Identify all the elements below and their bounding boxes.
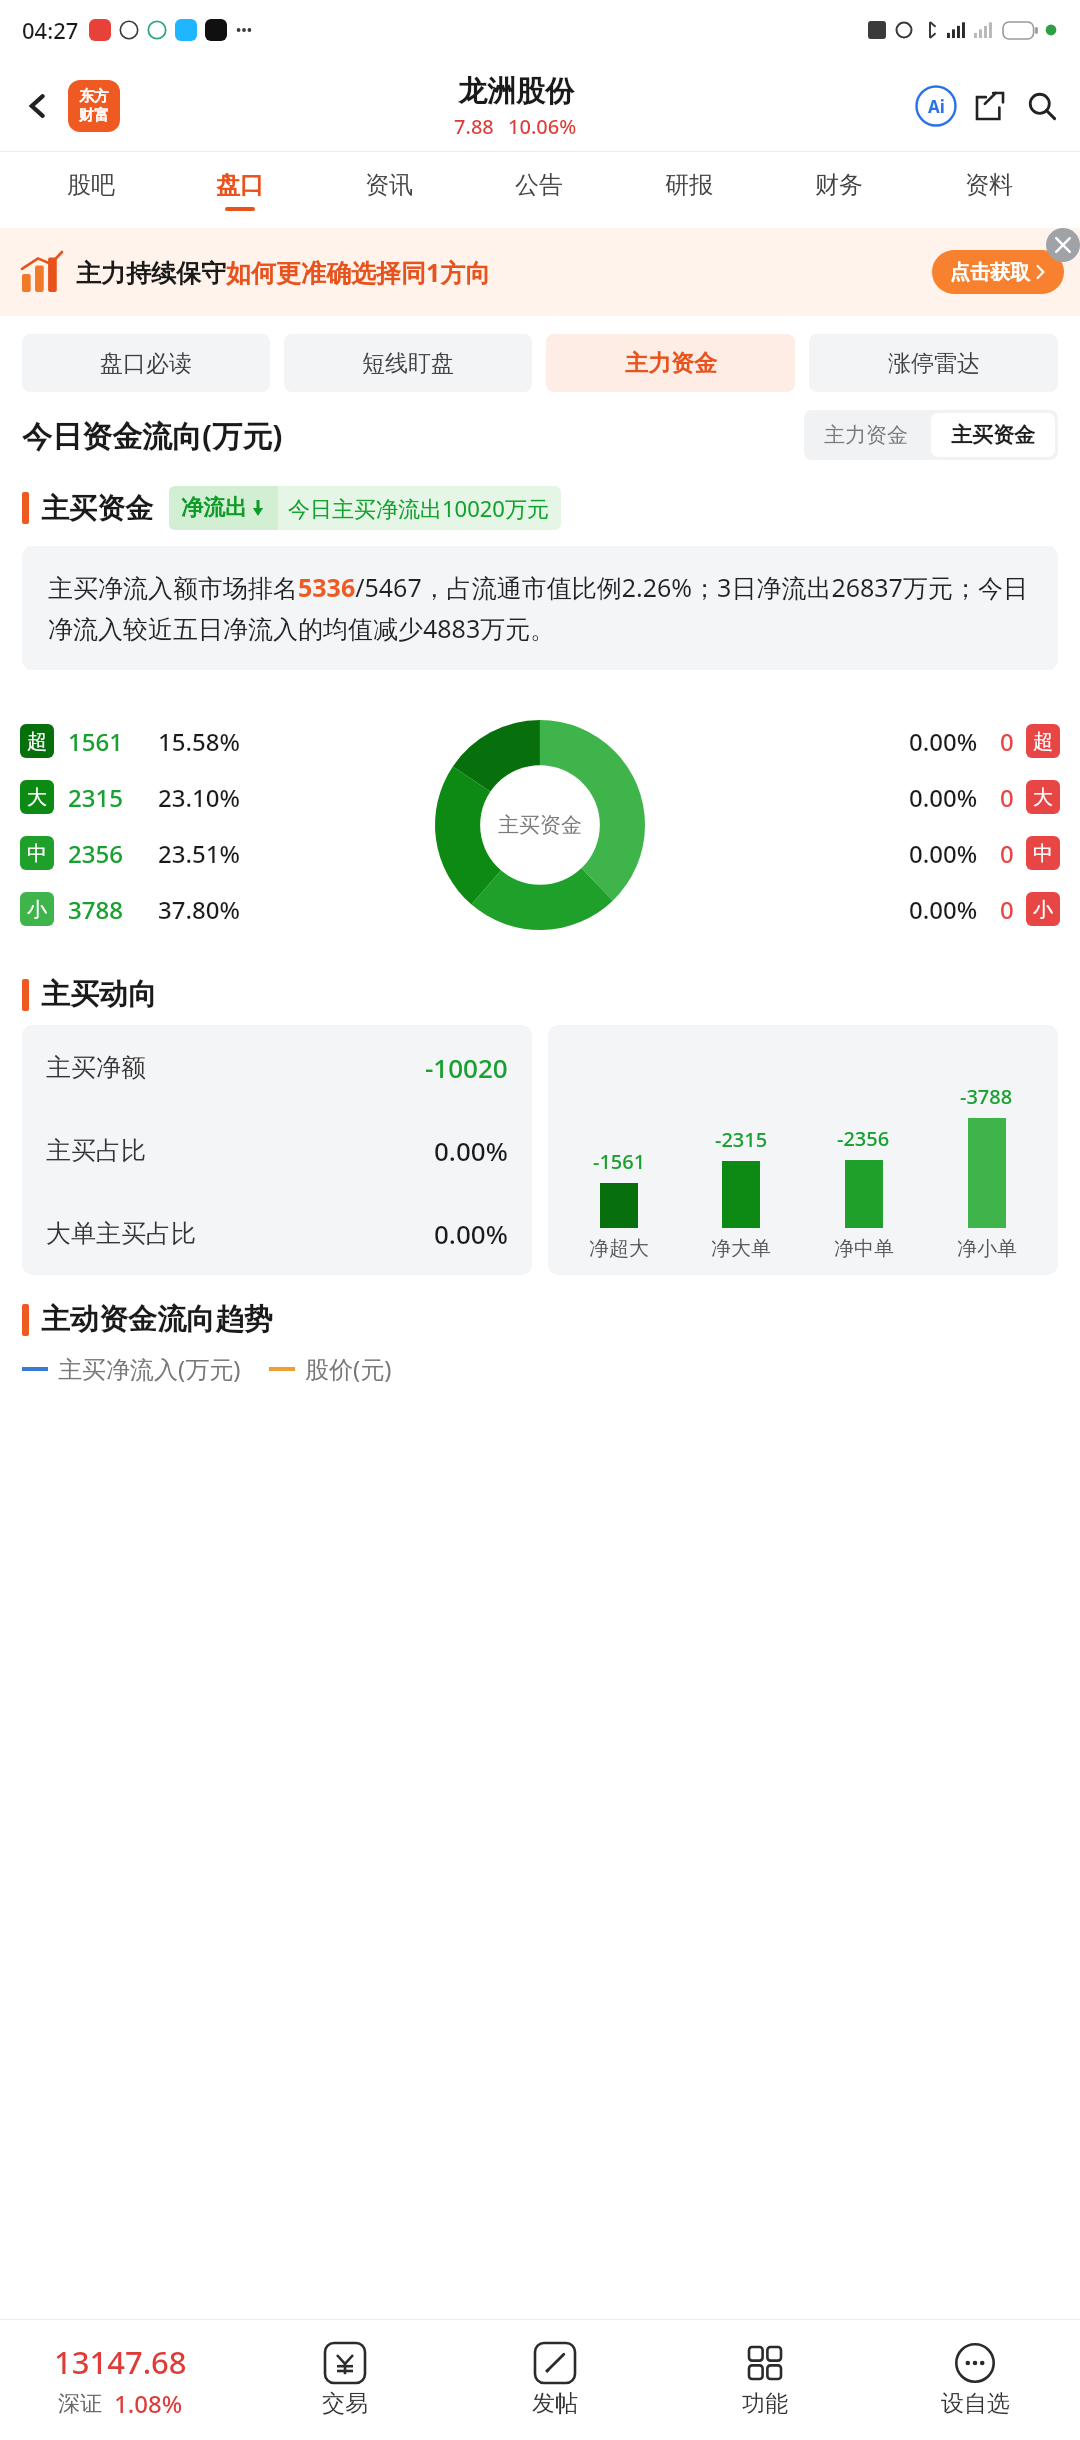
staticText: 股吧 — [67, 170, 115, 200]
staticText: 净超大 — [589, 1236, 649, 1261]
staticText: 小 — [27, 897, 47, 922]
staticText: 1.08% — [114, 2387, 183, 2420]
button[interactable]: 主力资金 — [546, 334, 795, 392]
button[interactable]: AI — [912, 82, 960, 130]
staticText: 点击获取 — [950, 260, 1030, 285]
button[interactable]: 资讯 — [314, 152, 464, 228]
button[interactable]: 盘口 — [165, 152, 314, 228]
staticText: 超 — [1033, 729, 1053, 754]
staticText: 主买资金 — [951, 422, 1035, 448]
button[interactable]: 主买资金 — [931, 413, 1055, 457]
button[interactable]: 点击获取 — [950, 250, 1046, 294]
staticText: 龙洲股份 — [458, 73, 574, 110]
staticText: 财富 — [79, 106, 109, 125]
button[interactable]: 研报 — [614, 152, 764, 228]
staticText: 0 — [1000, 725, 1014, 758]
staticText: 大 — [1033, 785, 1053, 810]
staticText: 股价(元) — [305, 1352, 392, 1385]
staticText: 净流出 — [181, 494, 247, 522]
staticText: 主动资金流向趋势 — [41, 1301, 273, 1338]
staticText: 37.80% — [158, 893, 240, 926]
staticText: 主买占比 — [46, 1135, 146, 1166]
button[interactable]: 东方财富 — [68, 80, 120, 132]
button[interactable]: 短线盯盘 — [284, 334, 532, 392]
staticText: 主力资金 — [824, 422, 908, 448]
staticText: 0.00% — [909, 893, 978, 926]
staticText: -2315 — [715, 1126, 768, 1153]
button[interactable]: 交易 — [240, 2320, 450, 2440]
staticText: 2356 — [68, 837, 150, 870]
staticText: 小 — [1033, 897, 1053, 922]
staticText: 今日资金流向(万元) — [22, 415, 283, 456]
button[interactable]: 功能 — [660, 2320, 870, 2440]
staticText: 0 — [1000, 781, 1014, 814]
button[interactable]: Share — [966, 82, 1014, 130]
staticText: 主买净流入(万元) — [58, 1352, 241, 1385]
staticText: 1561 — [68, 725, 150, 758]
staticText: 3788 — [68, 893, 150, 926]
staticText: 中 — [27, 841, 47, 866]
button[interactable]: Close — [1046, 228, 1080, 262]
staticText: -2356 — [837, 1125, 890, 1152]
button[interactable]: Back — [14, 82, 62, 130]
staticText: 研报 — [665, 170, 713, 200]
staticText: 0.00% — [434, 1216, 508, 1251]
staticText: 7.88 — [454, 113, 494, 140]
button[interactable]: Search — [1018, 82, 1066, 130]
staticText: 主买净额 — [46, 1052, 146, 1083]
staticText: 设自选 — [941, 2389, 1010, 2418]
button[interactable]: 主力持续保守如何更准确选择同1方向 — [0, 228, 1080, 316]
staticText: 大 — [27, 785, 47, 810]
button[interactable]: 股吧 — [16, 152, 165, 228]
staticText: 主买资金 — [41, 491, 153, 526]
staticText: 盘口 — [216, 170, 264, 200]
staticText: 公告 — [515, 170, 563, 200]
staticText: 主力持续保守如何更准确选择同1方向 — [76, 255, 491, 289]
staticText: 0 — [1000, 893, 1014, 926]
staticText: 功能 — [742, 2389, 788, 2418]
staticText: 主力资金 — [625, 349, 717, 378]
staticText: 15.58% — [158, 725, 240, 758]
staticText: 主买动向 — [41, 976, 157, 1013]
staticText: 中 — [1033, 841, 1053, 866]
button[interactable]: 主力资金 — [804, 410, 928, 460]
staticText: -3788 — [960, 1083, 1013, 1110]
staticText: 资讯 — [365, 170, 413, 200]
staticText: -1561 — [593, 1148, 646, 1175]
button[interactable]: 盘口必读 — [22, 334, 270, 392]
staticText: 短线盯盘 — [362, 349, 454, 378]
button[interactable]: 13147.68 — [0, 2320, 240, 2440]
staticText: -10020 — [425, 1050, 508, 1085]
staticText: 0 — [1000, 837, 1014, 870]
staticText: 交易 — [322, 2389, 368, 2418]
staticText: 大单主买占比 — [46, 1218, 196, 1249]
staticText: Ai — [928, 95, 945, 118]
staticText: 净大单 — [711, 1236, 771, 1261]
button[interactable]: 涨停雷达 — [809, 334, 1058, 392]
staticText: 0.00% — [909, 725, 978, 758]
staticText: 净中单 — [834, 1236, 894, 1261]
staticText: 13147.68 — [54, 2341, 187, 2383]
staticText: 超 — [27, 729, 47, 754]
staticText: 深证 — [58, 2390, 102, 2418]
button[interactable]: 资料 — [914, 152, 1064, 228]
button[interactable]: 公告 — [464, 152, 614, 228]
button[interactable]: 财务 — [764, 152, 914, 228]
button[interactable]: 发帖 — [450, 2320, 660, 2440]
staticText: 主买资金 — [498, 812, 582, 838]
staticText: 23.10% — [158, 781, 240, 814]
staticText: 0.00% — [909, 837, 978, 870]
staticText: 主买净流入额市场排名5336/5467，占流通市值比例2.26%；3日净流出26… — [48, 570, 1032, 646]
staticText: 东方 — [79, 87, 109, 106]
staticText: 今日主买净流出10020万元 — [288, 493, 549, 523]
staticText: 净小单 — [957, 1236, 1017, 1261]
staticText: 0.00% — [434, 1133, 508, 1168]
staticText: 涨停雷达 — [888, 349, 980, 378]
staticText: 盘口必读 — [100, 349, 192, 378]
staticText: 23.51% — [158, 837, 240, 870]
staticText: 财务 — [815, 170, 863, 200]
button[interactable]: 设自选 — [870, 2320, 1080, 2440]
staticText: 资料 — [965, 170, 1013, 200]
staticText: 2315 — [68, 781, 150, 814]
staticText: 0.00% — [909, 781, 978, 814]
